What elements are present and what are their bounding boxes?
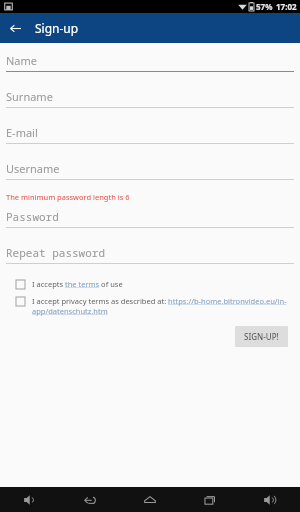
button[interactable]: SIGN-UP! bbox=[235, 326, 288, 347]
staticText: The minimum password length is 6 bbox=[6, 192, 130, 202]
staticText: Password bbox=[6, 209, 59, 224]
staticText: E-mail bbox=[6, 125, 38, 140]
button[interactable]: Password bbox=[6, 209, 294, 228]
button[interactable]: Accept bbox=[16, 297, 25, 306]
button[interactable]: Back bbox=[60, 487, 120, 512]
button[interactable]: Accept bbox=[6, 296, 294, 316]
staticText: 17:02 bbox=[276, 1, 297, 12]
button[interactable]: Username bbox=[6, 161, 294, 180]
staticText: I accept privacy terms as described at: … bbox=[32, 296, 294, 316]
staticText: Repeat password bbox=[6, 245, 105, 260]
button[interactable]: Surname bbox=[6, 89, 294, 108]
staticText: 57% bbox=[256, 1, 273, 12]
button[interactable]: Name bbox=[6, 53, 294, 72]
button[interactable]: Accept bbox=[6, 279, 294, 289]
staticText: Username bbox=[6, 161, 60, 176]
button[interactable]: Home bbox=[120, 487, 180, 512]
staticText: Name bbox=[6, 53, 38, 68]
staticText: Sign-up bbox=[35, 20, 79, 36]
staticText: I accepts the terms of use bbox=[32, 279, 123, 289]
staticText: Surname bbox=[6, 89, 53, 104]
button[interactable]: Recents bbox=[180, 487, 240, 512]
button[interactable]: Repeat password bbox=[6, 245, 294, 264]
button[interactable]: Back bbox=[0, 13, 30, 43]
button[interactable]: Volume down bbox=[0, 487, 60, 512]
staticText: SIGN-UP! bbox=[244, 331, 279, 342]
button[interactable]: E-mail bbox=[6, 125, 294, 144]
button[interactable]: Accept bbox=[16, 280, 25, 289]
button[interactable]: Volume up bbox=[240, 487, 300, 512]
